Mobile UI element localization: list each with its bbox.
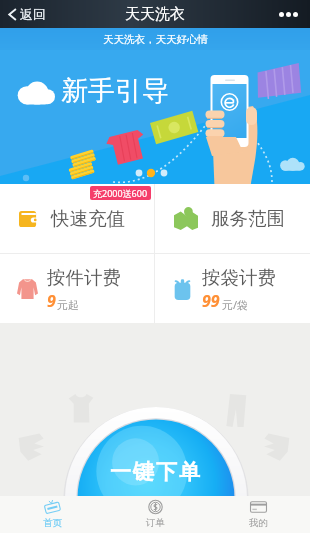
staticText: 99 xyxy=(202,290,220,312)
staticText: 天天洗衣 xyxy=(125,5,185,24)
button[interactable]: 服务范围 xyxy=(155,184,310,253)
staticText: 一键下单 xyxy=(109,459,201,485)
staticText: 充2000送600 xyxy=(93,187,148,199)
staticText: 新手引导 xyxy=(61,74,169,108)
staticText: 按袋计费 xyxy=(202,266,276,289)
button[interactable]: 按袋计费 xyxy=(155,254,310,323)
button[interactable]: 首页 xyxy=(0,496,104,533)
staticText: 快速充值 xyxy=(51,207,125,230)
staticText: 元起 xyxy=(57,298,79,312)
staticText: 天天洗衣，天天好心情 xyxy=(103,33,208,46)
button[interactable]: 按件计费 xyxy=(0,254,154,323)
staticText: 返回 xyxy=(20,6,46,22)
button[interactable]: 订单 xyxy=(104,496,207,533)
staticText: 元/袋 xyxy=(222,297,249,312)
button[interactable]: 一键下单 xyxy=(0,323,310,496)
staticText: 我的 xyxy=(249,517,268,529)
staticText: 首页 xyxy=(43,517,62,529)
staticText: 订单 xyxy=(146,517,165,529)
button[interactable]: 返回 xyxy=(0,2,52,26)
button[interactable]: 快速充值 xyxy=(0,184,154,253)
staticText: 9 xyxy=(47,290,56,312)
staticText: 服务范围 xyxy=(211,207,285,230)
button[interactable]: More options xyxy=(267,4,310,25)
staticText: 按件计费 xyxy=(47,266,121,289)
button[interactable]: 我的 xyxy=(207,496,310,533)
